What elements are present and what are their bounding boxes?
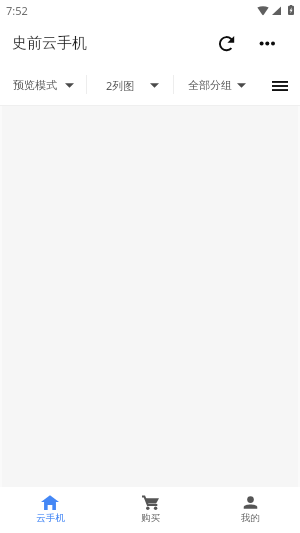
button[interactable]: 预览模式 <box>7 62 80 106</box>
button[interactable]: 全部分组 <box>182 62 252 106</box>
staticText: 购买 <box>141 512 160 524</box>
staticText: 云手机 <box>36 512 65 524</box>
staticText: 7:52 <box>6 3 28 18</box>
button[interactable]: 购买 <box>100 487 200 533</box>
button[interactable]: Menu <box>264 62 296 106</box>
staticText: 预览模式 <box>13 78 57 92</box>
button[interactable]: 云手机 <box>0 487 100 533</box>
staticText: 史前云手机 <box>12 34 87 53</box>
button[interactable]: 2列图 <box>100 62 165 106</box>
button[interactable]: 我的 <box>200 487 300 533</box>
staticText: 我的 <box>241 512 260 524</box>
staticText: 全部分组 <box>188 78 232 92</box>
button[interactable]: Refresh <box>208 24 244 62</box>
staticText: 2列图 <box>106 78 135 93</box>
button[interactable]: More options <box>249 24 285 62</box>
